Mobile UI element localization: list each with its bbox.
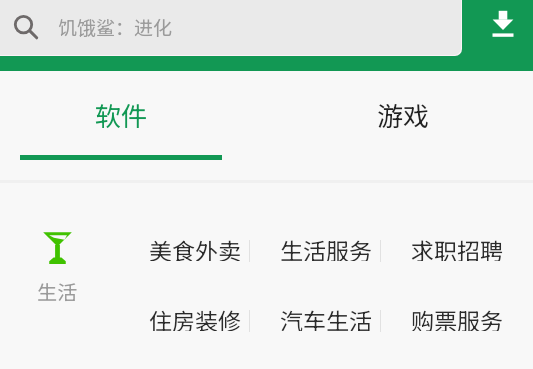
staticText: 软件 — [11, 96, 231, 134]
button[interactable]: 生活 — [27, 232, 87, 306]
staticText: 生活 — [37, 277, 77, 306]
staticText: 住房装修 — [149, 303, 241, 331]
staticText: 汽车生活 — [280, 303, 372, 331]
button[interactable]: 美食外卖 — [149, 233, 241, 261]
button[interactable]: 求职招聘 — [411, 233, 503, 261]
staticText: 求职招聘 — [411, 233, 503, 261]
button[interactable]: 软件 — [11, 71, 231, 180]
staticText: 购票服务 — [411, 303, 503, 331]
button[interactable]: Downloads — [478, 0, 528, 48]
button[interactable]: 汽车生活 — [280, 303, 372, 331]
staticText: 生活服务 — [280, 233, 372, 261]
staticText: 美食外卖 — [149, 233, 241, 261]
button[interactable]: 游戏 — [293, 71, 513, 180]
staticText: 游戏 — [293, 96, 513, 134]
button[interactable]: 住房装修 — [149, 303, 241, 331]
button[interactable]: 购票服务 — [411, 303, 503, 331]
button[interactable]: 生活服务 — [280, 233, 372, 261]
button[interactable]: Search — [0, 0, 461, 55]
staticText: 饥饿鲨：进化 — [58, 13, 173, 41]
